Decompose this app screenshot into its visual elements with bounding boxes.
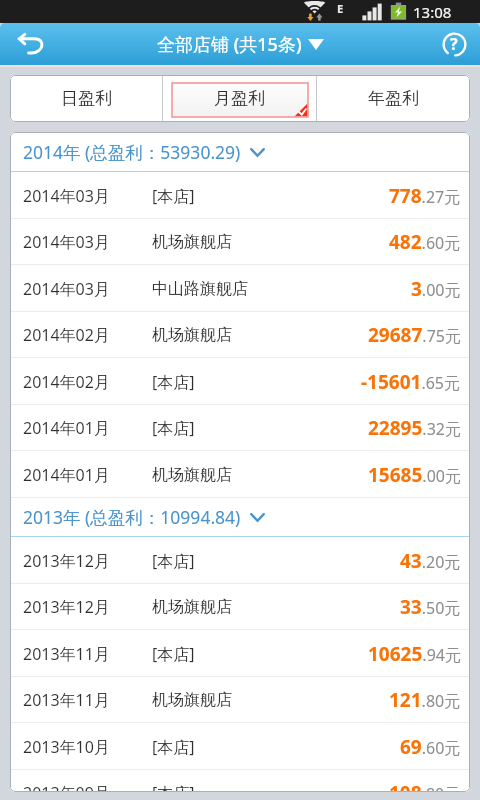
- staticText: 2014年02月: [23, 324, 110, 346]
- staticText: 2014年02月: [23, 371, 110, 393]
- staticText: 33.50元: [400, 594, 461, 620]
- staticText: 2014年03月: [23, 231, 110, 253]
- staticText: 43.20元: [400, 548, 461, 574]
- staticText: [本店]: [152, 371, 195, 393]
- button[interactable]: Back: [0, 23, 60, 65]
- button[interactable]: 全部店铺 (共15条): [153, 32, 328, 57]
- staticText: 中山路旗舰店: [152, 279, 248, 299]
- staticText: [本店]: [152, 643, 195, 665]
- button[interactable]: 2013年09月: [10, 769, 470, 792]
- staticText: 年盈利: [368, 88, 419, 109]
- button[interactable]: 2013年10月: [10, 723, 470, 770]
- button[interactable]: 2014年01月: [10, 451, 470, 498]
- staticText: 机场旗舰店: [152, 465, 232, 485]
- button[interactable]: 2013年12月: [10, 583, 470, 630]
- staticText: 2013年10月: [23, 736, 110, 758]
- staticText: 2013年12月: [23, 596, 110, 618]
- staticText: 2014年01月: [23, 417, 110, 439]
- staticText: 482.60元: [389, 229, 461, 255]
- staticText: [本店]: [152, 417, 195, 439]
- staticText: 108.80元: [389, 780, 461, 792]
- staticText: [本店]: [152, 736, 195, 758]
- staticText: [本店]: [152, 185, 195, 207]
- button[interactable]: 2014年01月: [10, 404, 470, 451]
- staticText: 3.00元: [411, 276, 461, 302]
- button[interactable]: 2014年03月: [10, 265, 470, 312]
- staticText: 2013年12月: [23, 550, 110, 572]
- staticText: 月盈利: [214, 88, 265, 109]
- staticText: 2014年03月: [23, 185, 110, 207]
- staticText: ?: [450, 33, 458, 55]
- staticText: 29687.75元: [368, 322, 461, 348]
- staticText: 2014年01月: [23, 464, 110, 486]
- staticText: E: [337, 1, 344, 16]
- staticText: 2013年09月: [23, 782, 110, 792]
- staticText: 69.60元: [400, 734, 461, 760]
- staticText: 日盈利: [61, 88, 112, 109]
- staticText: 2014年03月: [23, 278, 110, 300]
- staticText: 22895.32元: [368, 415, 461, 441]
- button[interactable]: Help: [428, 23, 480, 65]
- staticText: 2014年 (总盈利：53930.29): [23, 140, 241, 164]
- staticText: 机场旗舰店: [152, 325, 232, 345]
- button[interactable]: 2013年 (总盈利：10994.84): [10, 497, 470, 537]
- staticText: 机场旗舰店: [152, 232, 232, 252]
- staticText: 778.27元: [389, 183, 461, 209]
- staticText: [本店]: [152, 782, 195, 792]
- staticText: 2013年11月: [23, 689, 110, 711]
- button[interactable]: 2013年11月: [10, 630, 470, 677]
- staticText: -15601.65元: [361, 369, 461, 395]
- button[interactable]: 2014年02月: [10, 358, 470, 405]
- button[interactable]: 年盈利: [317, 75, 470, 122]
- button[interactable]: 日盈利: [10, 75, 162, 122]
- staticText: 10625.94元: [368, 641, 461, 667]
- button[interactable]: 2013年11月: [10, 676, 470, 723]
- staticText: 15685.00元: [368, 462, 461, 488]
- button[interactable]: 2014年02月: [10, 311, 470, 358]
- button[interactable]: 2014年03月: [10, 172, 470, 219]
- staticText: 机场旗舰店: [152, 597, 232, 617]
- staticText: 机场旗舰店: [152, 690, 232, 710]
- button[interactable]: 2014年 (总盈利：53930.29): [10, 132, 470, 172]
- staticText: 13:08: [413, 2, 452, 22]
- button[interactable]: 月盈利: [163, 75, 316, 122]
- staticText: [本店]: [152, 550, 195, 572]
- button[interactable]: 2013年12月: [10, 537, 470, 584]
- staticText: 121.80元: [389, 687, 461, 713]
- staticText: 2013年11月: [23, 643, 110, 665]
- button[interactable]: 2014年03月: [10, 218, 470, 265]
- staticText: 全部店铺 (共15条): [157, 32, 302, 57]
- staticText: 2013年 (总盈利：10994.84): [23, 505, 241, 529]
